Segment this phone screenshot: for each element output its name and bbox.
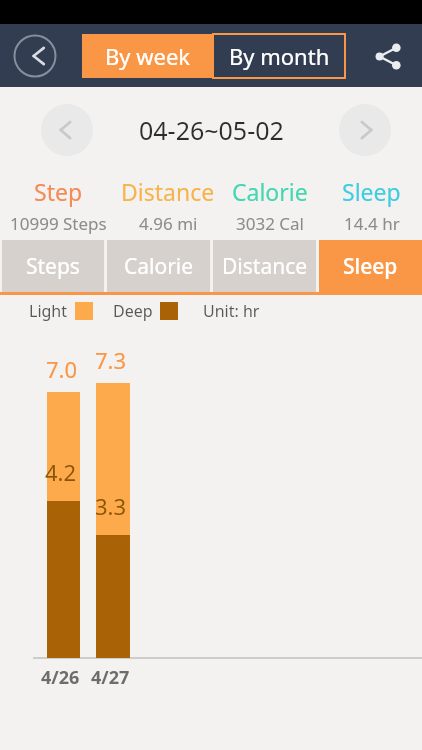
button[interactable]: Share: [365, 33, 411, 79]
staticText: Deep: [113, 300, 153, 322]
staticText: Light: [29, 300, 68, 322]
staticText: Sleep: [343, 252, 398, 281]
button[interactable]: Next period: [339, 104, 391, 156]
button[interactable]: By week: [82, 34, 213, 78]
staticText: 4/27: [91, 665, 130, 690]
staticText: 4.96 mi: [139, 212, 198, 235]
button[interactable]: Sleep: [321, 173, 422, 240]
button[interactable]: Steps: [2, 240, 104, 292]
button[interactable]: Sleep: [319, 240, 422, 292]
staticText: 04-26~05-02: [139, 113, 284, 147]
button[interactable]: Calorie: [219, 173, 321, 240]
button[interactable]: Previous period: [41, 104, 93, 156]
staticText: Calorie: [124, 252, 194, 281]
staticText: 4/26: [41, 665, 80, 690]
staticText: Calorie: [232, 176, 308, 207]
button[interactable]: Calorie: [107, 240, 210, 292]
button[interactable]: Step: [0, 173, 117, 240]
staticText: 4.2: [45, 457, 77, 487]
staticText: 7.0: [46, 354, 78, 384]
button[interactable]: Distance: [117, 173, 219, 240]
button[interactable]: Back: [13, 34, 57, 78]
button[interactable]: By month: [213, 34, 345, 78]
staticText: By week: [105, 41, 191, 71]
staticText: 7.3: [95, 345, 127, 375]
staticText: 14.4 hr: [344, 212, 400, 235]
staticText: By month: [229, 41, 330, 71]
staticText: Step: [34, 176, 83, 207]
staticText: Unit: hr: [203, 300, 260, 322]
staticText: 10999 Steps: [10, 212, 107, 235]
staticText: Steps: [26, 252, 80, 281]
staticText: 3032 Cal: [236, 212, 304, 235]
staticText: Distance: [222, 252, 308, 281]
staticText: Sleep: [342, 176, 401, 207]
staticText: 3.3: [95, 491, 127, 521]
staticText: Distance: [121, 176, 215, 207]
button[interactable]: Distance: [213, 240, 316, 292]
